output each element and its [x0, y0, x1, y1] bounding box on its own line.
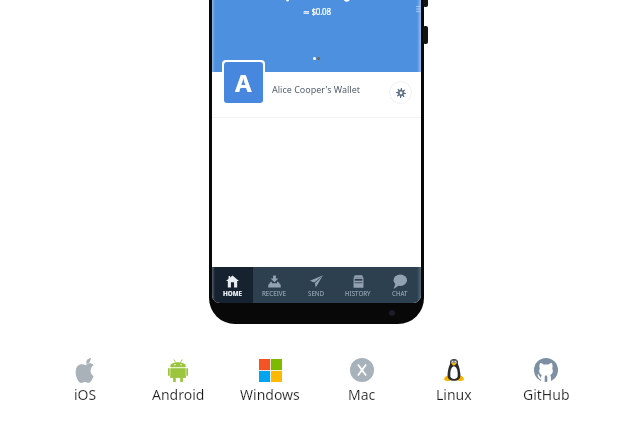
staticText: SEND — [308, 289, 325, 297]
staticText: Mac — [348, 385, 376, 404]
button[interactable]: Linux — [408, 357, 500, 404]
staticText: Alice Cooper's Wallet — [272, 83, 361, 95]
staticText: CHAT — [392, 289, 408, 297]
staticText: HOME — [223, 289, 242, 297]
staticText: iOS — [74, 385, 97, 404]
button[interactable]: SEND — [295, 267, 337, 303]
staticText: Linux — [436, 385, 472, 404]
staticText: 0.00000000 — [262, 0, 371, 4]
staticText: ≈ $0.08 — [303, 6, 331, 17]
button[interactable]: CHAT — [379, 267, 421, 303]
button[interactable]: Menu — [416, 6, 420, 12]
staticText: Windows — [240, 385, 300, 404]
button[interactable]: Mac — [316, 357, 408, 404]
button[interactable]: Wallet settings — [389, 81, 412, 104]
staticText: A — [235, 66, 252, 99]
button[interactable]: Android — [132, 357, 224, 404]
button[interactable]: HOME — [212, 267, 253, 303]
button[interactable]: iOS — [39, 357, 132, 404]
button[interactable]: GitHub — [500, 357, 592, 404]
staticText: HISTORY — [345, 289, 371, 297]
staticText: GitHub — [523, 385, 570, 404]
button[interactable]: RECEIVE — [253, 267, 295, 303]
button[interactable]: HISTORY — [337, 267, 379, 303]
staticText: RECEIVE — [262, 289, 286, 297]
staticText: Android — [152, 385, 205, 404]
button[interactable]: Windows — [224, 357, 316, 404]
